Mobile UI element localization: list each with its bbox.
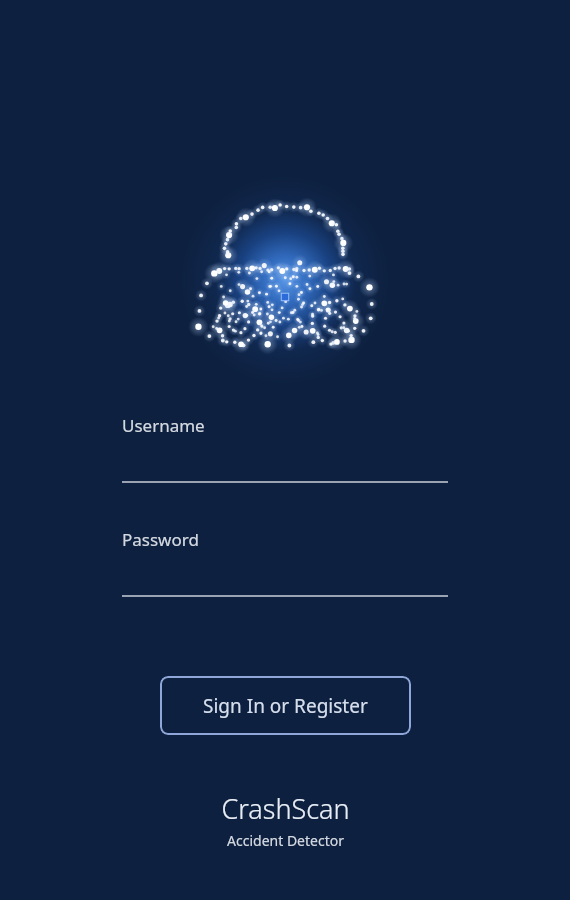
staticText: Username (122, 414, 205, 437)
staticText: Password (122, 528, 199, 551)
staticText: Accident Detector (227, 831, 344, 850)
button[interactable]: Sign In or Register (160, 676, 411, 735)
staticText: Sign In or Register (203, 693, 368, 719)
staticText: CrashScan (221, 790, 350, 827)
